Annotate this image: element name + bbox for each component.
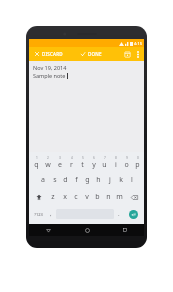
staticText: t bbox=[81, 160, 84, 170]
staticText: f bbox=[75, 175, 78, 185]
button[interactable]: z bbox=[47, 189, 59, 205]
button[interactable]: b bbox=[92, 189, 103, 205]
staticText: p bbox=[135, 160, 140, 170]
button[interactable]: 8 bbox=[110, 154, 121, 171]
button[interactable]: 9 bbox=[121, 154, 132, 171]
button[interactable]: a bbox=[37, 172, 49, 188]
staticText: ?123 bbox=[34, 212, 43, 217]
staticText: g bbox=[85, 175, 90, 185]
staticText: h bbox=[96, 175, 101, 185]
staticText: v bbox=[85, 192, 89, 202]
staticText: z bbox=[51, 192, 55, 202]
button[interactable]: 1 bbox=[30, 154, 42, 171]
button[interactable]: h bbox=[93, 172, 104, 188]
button[interactable]: Nov 19, 2014 bbox=[29, 61, 144, 152]
button[interactable]: l bbox=[126, 172, 137, 188]
staticText: 3 bbox=[59, 156, 61, 160]
staticText: 2 bbox=[47, 156, 49, 160]
staticText: 4 bbox=[71, 156, 73, 160]
button[interactable]: Set reminder bbox=[122, 49, 133, 60]
button[interactable]: DISCARD bbox=[32, 49, 65, 59]
staticText: DONE bbox=[88, 51, 102, 57]
staticText: 0 bbox=[137, 156, 139, 160]
button[interactable]: 2 bbox=[42, 154, 54, 171]
staticText: x bbox=[63, 192, 67, 202]
button[interactable]: 4 bbox=[66, 154, 77, 171]
staticText: 4:15 bbox=[134, 41, 142, 46]
staticText: j bbox=[109, 175, 111, 185]
button[interactable]: c bbox=[70, 189, 81, 205]
button[interactable]: d bbox=[60, 172, 71, 188]
button[interactable]: More options bbox=[134, 49, 142, 60]
button[interactable]: j bbox=[104, 172, 115, 188]
staticText: DISCARD bbox=[42, 51, 63, 57]
button[interactable]: k bbox=[115, 172, 126, 188]
staticText: w bbox=[45, 160, 51, 170]
staticText: , bbox=[50, 210, 52, 218]
staticText: k bbox=[119, 175, 123, 185]
button[interactable]: Backspace bbox=[125, 189, 143, 205]
button[interactable]: Recent apps bbox=[106, 224, 144, 236]
button[interactable]: x bbox=[59, 189, 70, 205]
staticText: Sample note bbox=[33, 72, 66, 79]
button[interactable]: g bbox=[82, 172, 93, 188]
staticText: 5 bbox=[82, 156, 84, 160]
staticText: l bbox=[131, 175, 133, 185]
staticText: 9 bbox=[126, 156, 128, 160]
staticText: Nov 19, 2014 bbox=[33, 64, 67, 71]
button[interactable]: ?123 bbox=[30, 206, 46, 222]
button[interactable]: s bbox=[49, 172, 60, 188]
staticText: i bbox=[115, 160, 117, 170]
staticText: o bbox=[124, 160, 129, 170]
staticText: b bbox=[95, 192, 100, 202]
staticText: s bbox=[53, 175, 57, 185]
staticText: 1 bbox=[36, 156, 38, 160]
button[interactable]: 0 bbox=[132, 154, 143, 171]
staticText: m bbox=[116, 192, 123, 202]
staticText: q bbox=[34, 160, 39, 170]
staticText: d bbox=[63, 175, 68, 185]
button[interactable]: Enter bbox=[129, 210, 138, 219]
button[interactable]: m bbox=[114, 189, 125, 205]
button[interactable]: v bbox=[81, 189, 92, 205]
staticText: u bbox=[102, 160, 107, 170]
staticText: e bbox=[58, 160, 62, 170]
button[interactable]: n bbox=[103, 189, 114, 205]
button[interactable]: 5 bbox=[77, 154, 88, 171]
staticText: r bbox=[70, 160, 73, 170]
staticText: 7 bbox=[104, 156, 106, 160]
button[interactable]: Shift bbox=[30, 189, 47, 205]
staticText: . bbox=[118, 210, 120, 218]
button[interactable]: 7 bbox=[99, 154, 110, 171]
button[interactable]: , bbox=[46, 206, 56, 222]
button[interactable]: Back bbox=[29, 224, 68, 236]
button[interactable]: Home bbox=[68, 224, 106, 236]
button[interactable]: 6 bbox=[88, 154, 99, 171]
staticText: 8 bbox=[115, 156, 117, 160]
staticText: a bbox=[41, 175, 45, 185]
staticText: 6 bbox=[93, 156, 95, 160]
staticText: c bbox=[74, 192, 78, 202]
button[interactable]: 3 bbox=[54, 154, 66, 171]
button[interactable]: DONE bbox=[78, 49, 104, 59]
button[interactable]: . bbox=[114, 206, 124, 222]
button[interactable]: f bbox=[71, 172, 82, 188]
staticText: n bbox=[106, 192, 111, 202]
staticText: y bbox=[92, 160, 96, 170]
